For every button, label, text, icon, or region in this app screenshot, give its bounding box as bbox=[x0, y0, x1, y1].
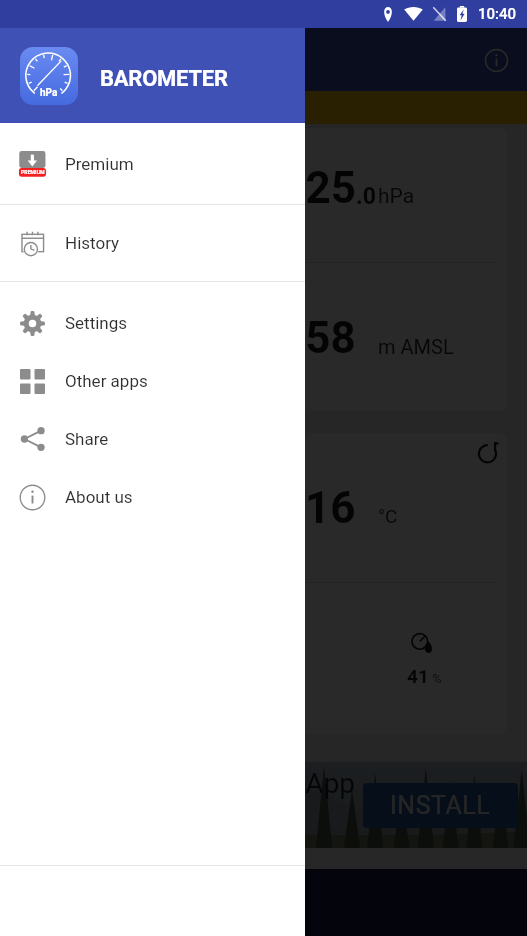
button[interactable]: Share bbox=[0, 410, 305, 468]
staticText: 41 bbox=[407, 665, 429, 687]
staticText: °C bbox=[378, 505, 398, 527]
button[interactable]: History bbox=[0, 205, 305, 281]
button[interactable]: Other apps bbox=[0, 352, 305, 410]
button[interactable]: 41 bbox=[345, 583, 507, 734]
staticText: Weather App bbox=[195, 767, 356, 800]
staticText: About us bbox=[65, 487, 133, 507]
button[interactable]: 8 bbox=[183, 583, 345, 734]
staticText: 10:40 bbox=[478, 5, 517, 23]
staticText: 158 bbox=[280, 312, 356, 364]
staticText: 1025 bbox=[255, 162, 356, 214]
staticText: hPa bbox=[378, 184, 415, 209]
staticText: hPa bbox=[40, 87, 58, 99]
button[interactable]: Settings bbox=[0, 294, 305, 352]
button[interactable]: Info bbox=[476, 40, 516, 80]
staticText: .0 bbox=[356, 183, 376, 210]
staticText: 16 bbox=[305, 482, 356, 534]
staticText: INSTALL bbox=[390, 791, 491, 820]
button[interactable]: Data bbox=[0, 869, 527, 936]
button[interactable]: Refresh bbox=[470, 434, 506, 470]
staticText: Settings bbox=[65, 313, 128, 333]
button[interactable]: PREMIUM bbox=[0, 123, 305, 204]
staticText: History bbox=[65, 233, 120, 253]
button[interactable]: About us bbox=[0, 468, 305, 526]
button[interactable]: INSTALL bbox=[363, 783, 518, 828]
staticText: m AMSL bbox=[378, 335, 454, 358]
staticText: BAROMETER bbox=[100, 66, 228, 92]
staticText: Premium bbox=[65, 154, 134, 174]
staticText: Share bbox=[65, 429, 109, 449]
staticText: Other apps bbox=[65, 371, 148, 391]
staticText: PREMIUM bbox=[21, 169, 45, 175]
staticText: % bbox=[429, 671, 442, 686]
